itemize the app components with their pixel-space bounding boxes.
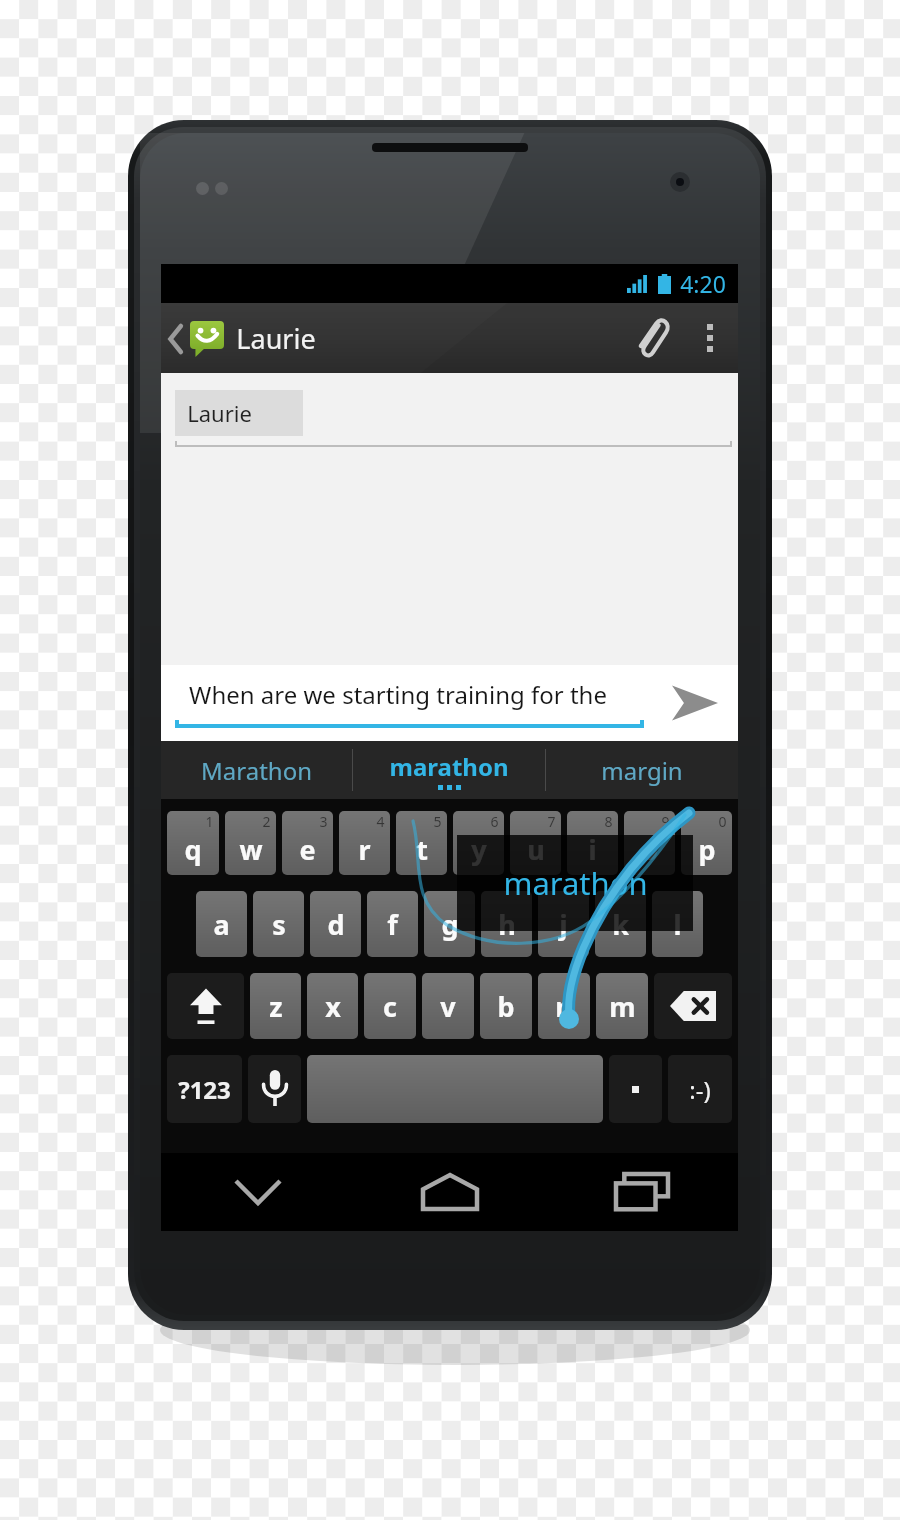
button[interactable]: 9 (624, 811, 675, 875)
staticText: p (698, 831, 716, 868)
staticText: Laurie (187, 398, 252, 428)
button[interactable]: k (595, 891, 646, 957)
button[interactable]: Shift (167, 973, 244, 1039)
staticText: j (559, 906, 568, 943)
button[interactable]: l (652, 891, 703, 957)
staticText: 7 (547, 812, 556, 831)
staticText: 5 (433, 812, 442, 831)
button[interactable] (307, 1055, 603, 1123)
button[interactable]: m (596, 973, 648, 1039)
staticText: k (612, 906, 629, 943)
staticText: When are we starting training for the (189, 678, 607, 711)
button[interactable]: 0 (681, 811, 732, 875)
staticText: 1 (205, 812, 214, 831)
button[interactable]: b (480, 973, 532, 1039)
staticText: 2 (262, 812, 271, 831)
staticText: w (239, 831, 263, 868)
button[interactable]: 4 (339, 811, 390, 875)
staticText: s (272, 906, 286, 943)
button[interactable]: h (481, 891, 532, 957)
button[interactable]: More options (682, 303, 738, 373)
staticText: 6 (490, 812, 499, 831)
staticText: x (325, 988, 341, 1025)
staticText: i (588, 831, 597, 868)
button[interactable]: Marathon (161, 741, 352, 799)
other: Shift (189, 986, 223, 1026)
button[interactable]: ?123 (167, 1055, 242, 1123)
button[interactable]: n (538, 973, 590, 1039)
button[interactable]: j (538, 891, 589, 957)
staticText: n (555, 988, 573, 1025)
button[interactable]: Hide keyboard (161, 1153, 354, 1231)
staticText: c (383, 988, 397, 1025)
button[interactable]: Home (354, 1153, 546, 1231)
button[interactable]: 5 (396, 811, 447, 875)
staticText: y (471, 831, 487, 868)
staticText: 8 (604, 812, 613, 831)
staticText: t (416, 831, 428, 868)
button[interactable]: v (422, 973, 474, 1039)
staticText: marathon (503, 862, 648, 904)
button[interactable]: 2 (225, 811, 276, 875)
button[interactable]: a (196, 891, 247, 957)
button[interactable]: g (424, 891, 475, 957)
other: Voice input (262, 1070, 288, 1108)
staticText: v (440, 988, 456, 1025)
other: Backspace (670, 991, 716, 1021)
staticText: r (358, 831, 371, 868)
staticText: g (441, 906, 459, 943)
staticText: h (498, 906, 516, 943)
staticText: 4:20 (680, 268, 726, 299)
staticText: 4 (376, 812, 385, 831)
staticText: :-) (689, 1073, 711, 1106)
button[interactable]: When are we starting training for the (161, 665, 652, 741)
button[interactable]: 7 (510, 811, 561, 875)
button[interactable]: Attach (620, 303, 682, 373)
staticText: a (213, 906, 230, 943)
staticText: b (497, 988, 515, 1025)
button[interactable]: 8 (567, 811, 618, 875)
button[interactable]: margin (546, 741, 738, 799)
button[interactable]: :-) (668, 1055, 732, 1123)
button[interactable] (609, 1055, 662, 1123)
button[interactable]: s (253, 891, 304, 957)
button[interactable]: Backspace (654, 973, 732, 1039)
button[interactable]: d (310, 891, 361, 957)
button[interactable]: f (367, 891, 418, 957)
button[interactable]: Recent apps (546, 1153, 738, 1231)
staticText: e (299, 831, 316, 868)
button[interactable]: 6 (453, 811, 504, 875)
staticText: q (184, 831, 202, 868)
staticText: l (673, 906, 682, 943)
staticText: ?123 (178, 1073, 231, 1106)
button[interactable]: Laurie (175, 390, 303, 436)
button[interactable]: marathon (353, 741, 545, 799)
staticText: u (527, 831, 545, 868)
button[interactable]: 3 (282, 811, 333, 875)
staticText: d (327, 906, 345, 943)
staticText: z (269, 988, 283, 1025)
staticText: f (387, 906, 398, 943)
button[interactable]: c (364, 973, 416, 1039)
button[interactable]: Send (652, 665, 738, 741)
button[interactable]: Voice input (248, 1055, 301, 1123)
staticText: Marathon (201, 754, 312, 787)
staticText: 0 (718, 812, 727, 831)
staticText: Laurie (236, 320, 316, 357)
staticText: m (609, 988, 636, 1025)
staticText: 9 (661, 812, 670, 831)
button[interactable]: z (250, 973, 301, 1039)
staticText: margin (601, 754, 683, 787)
button[interactable]: x (307, 973, 358, 1039)
button[interactable]: Laurie (161, 320, 324, 357)
staticText: o (641, 831, 658, 868)
staticText: marathon (389, 750, 509, 783)
button[interactable]: 1 (167, 811, 219, 875)
staticText: 3 (319, 812, 328, 831)
